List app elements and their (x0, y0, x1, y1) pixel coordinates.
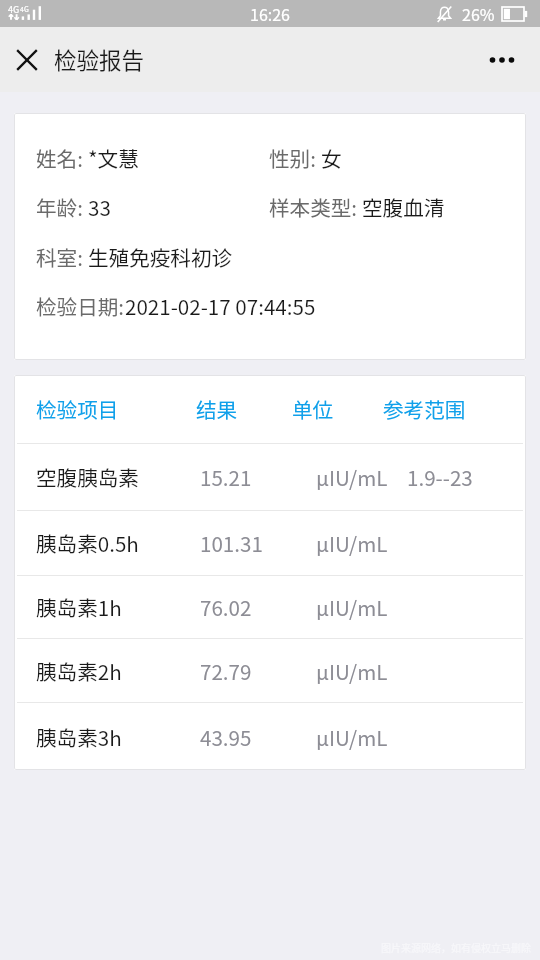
staticText: 参考范围 (383, 394, 466, 424)
staticText: 4G (8, 3, 20, 16)
button[interactable]: Close (7, 40, 47, 80)
staticText: μIU/mL (316, 528, 388, 558)
staticText: 检验报告 (54, 43, 145, 76)
staticText: 生殖免疫科初诊 (88, 242, 233, 272)
staticText: 4G (20, 4, 29, 14)
staticText: μIU/mL (316, 656, 388, 686)
staticText: 43.95 (200, 722, 252, 752)
staticText: 胰岛素1h (36, 592, 122, 622)
staticText: *文慧 (88, 143, 139, 173)
button[interactable]: More options (478, 36, 526, 84)
staticText: 33 (88, 192, 111, 222)
staticText: 16:26 (250, 2, 290, 25)
staticText: 结果 (196, 394, 238, 424)
staticText: 样本类型: (269, 192, 362, 222)
staticText: 单位 (292, 394, 334, 424)
staticText: 15.21 (200, 462, 252, 492)
button[interactable]: 胰岛素2h (14, 639, 526, 702)
staticText: μIU/mL (316, 592, 388, 622)
staticText: μIU/mL (316, 722, 388, 752)
staticText: 年龄: (36, 192, 88, 222)
staticText: 科室: (36, 242, 88, 272)
staticText: 性别: (269, 143, 321, 173)
button[interactable]: 检验项目 (14, 375, 526, 443)
staticText: 1.9--23 (407, 462, 473, 492)
staticText: 空腹血清 (362, 192, 445, 222)
button[interactable]: 胰岛素1h (14, 576, 526, 638)
staticText: 72.79 (200, 656, 252, 686)
staticText: 76.02 (200, 592, 252, 622)
button[interactable]: 空腹胰岛素 (14, 444, 526, 510)
button[interactable]: 胰岛素0.5h (14, 511, 526, 575)
staticText: 空腹胰岛素 (36, 462, 139, 492)
staticText: 女 (321, 143, 342, 173)
staticText: 胰岛素0.5h (36, 528, 139, 558)
button[interactable]: 胰岛素3h (14, 703, 526, 770)
staticText: 2021-02-17 07:44:55 (125, 291, 316, 321)
staticText: 检验项目 (36, 394, 119, 424)
staticText: 26% (462, 2, 495, 25)
staticText: 胰岛素3h (36, 722, 122, 752)
staticText: 胰岛素2h (36, 656, 122, 686)
staticText: 姓名: (36, 143, 88, 173)
staticText: 检验日期: (36, 291, 125, 321)
staticText: μIU/mL (316, 462, 388, 492)
staticText: 101.31 (200, 528, 263, 558)
